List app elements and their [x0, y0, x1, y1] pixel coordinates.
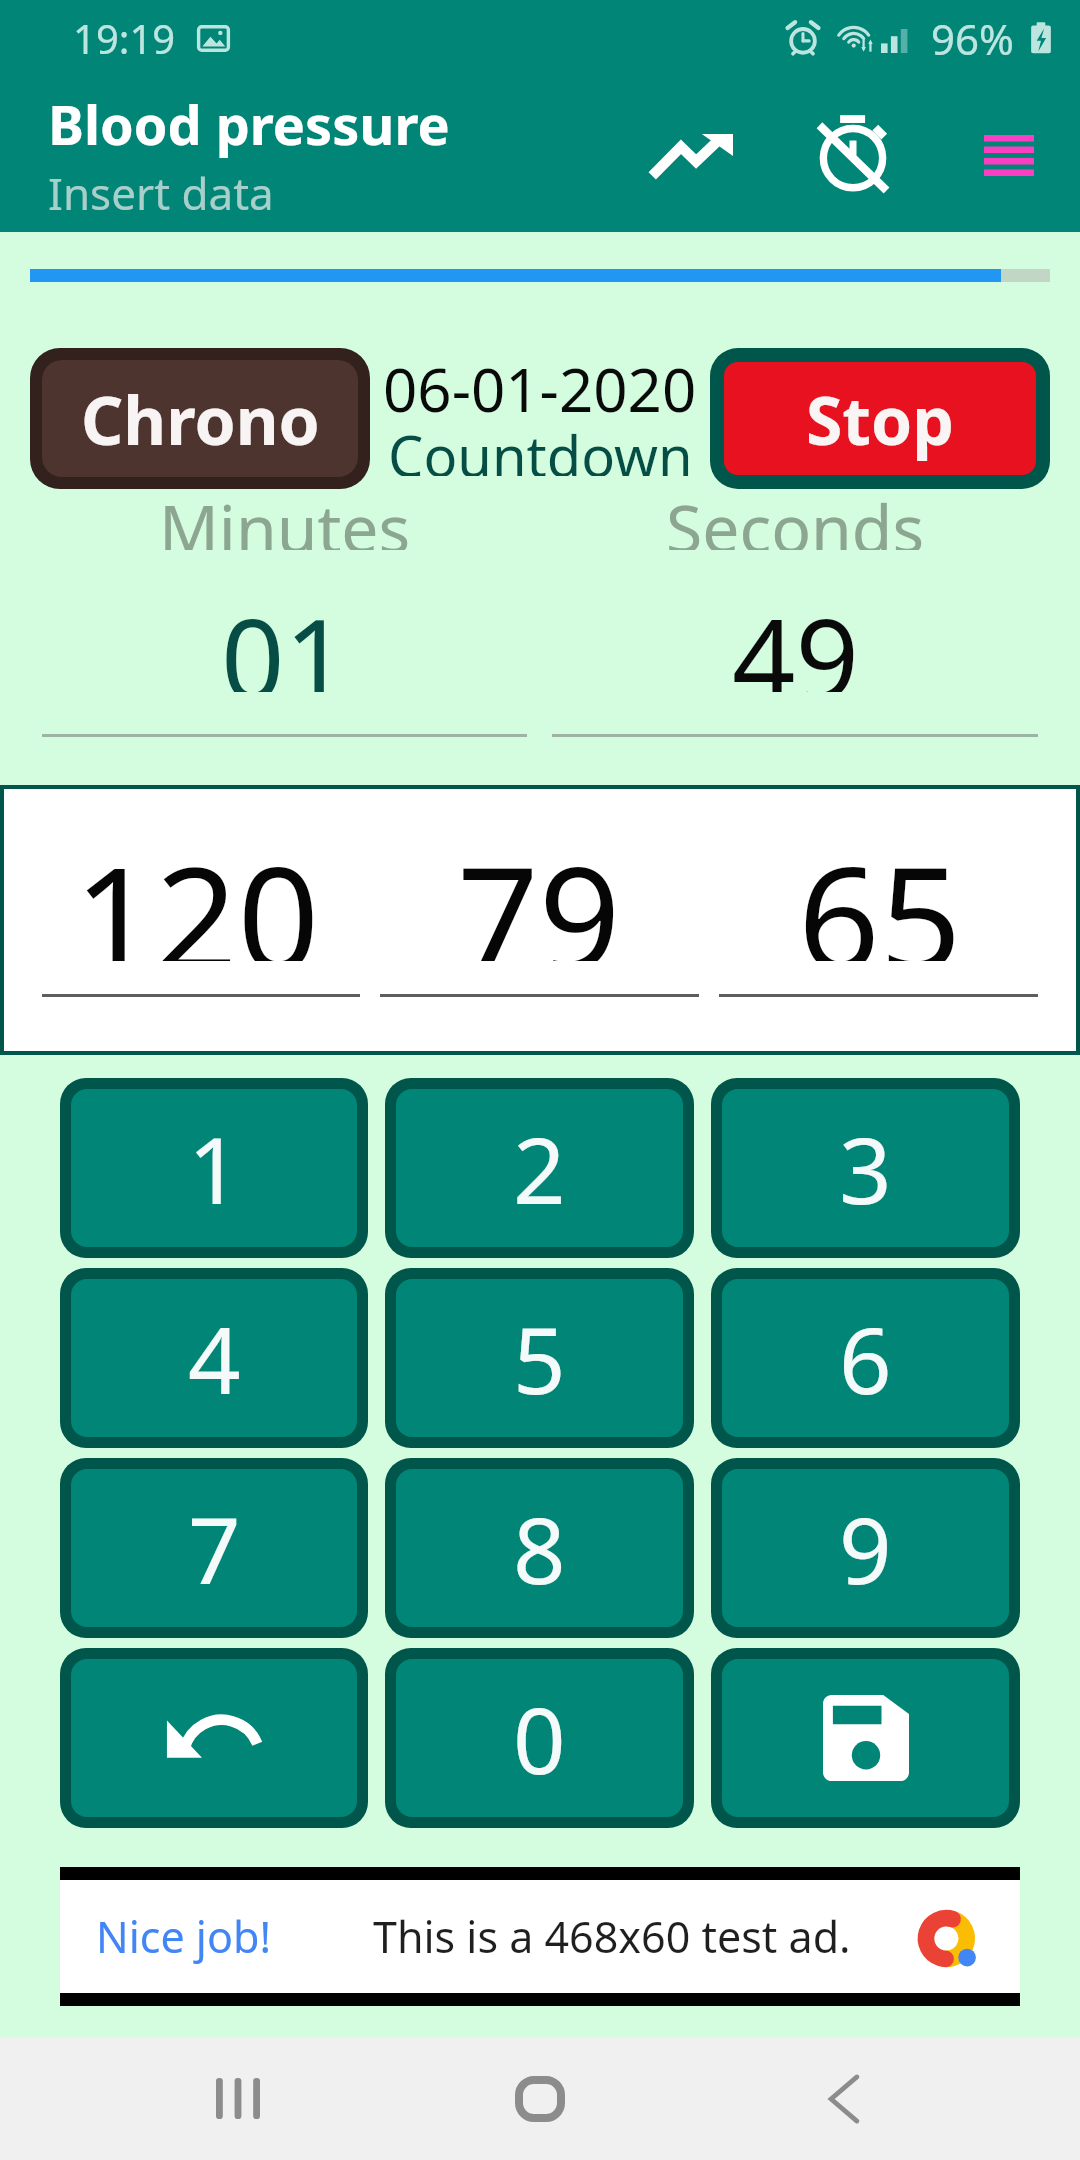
button[interactable]: Chrono — [42, 360, 358, 477]
button[interactable]: Undo — [71, 1659, 357, 1817]
button[interactable]: Stop — [724, 362, 1036, 475]
staticText: 1 — [188, 1106, 241, 1231]
button[interactable]: 7 — [71, 1469, 357, 1627]
staticText: 96% — [931, 10, 1014, 67]
staticText: 120 — [74, 818, 320, 961]
staticText: 4 — [188, 1296, 241, 1421]
button[interactable]: 1 — [71, 1089, 357, 1247]
staticText: 5 — [513, 1296, 566, 1421]
staticText: 79 — [457, 818, 621, 961]
staticText: 9 — [839, 1486, 892, 1611]
staticText: 06-01-2020 — [383, 348, 697, 430]
button[interactable]: Recents — [0, 2037, 390, 2160]
staticText: Insert data — [48, 163, 274, 223]
staticText: 2 — [513, 1106, 566, 1231]
staticText: 8 — [513, 1486, 566, 1611]
button[interactable]: 9 — [722, 1469, 1009, 1627]
staticText: 65 — [798, 818, 962, 961]
staticText: Nice job! — [96, 1907, 271, 1966]
staticText: Seconds — [666, 482, 925, 550]
button[interactable]: 3 — [722, 1089, 1009, 1247]
button[interactable]: 4 — [71, 1279, 357, 1437]
button[interactable]: Home — [390, 2037, 690, 2160]
staticText: 19:19 — [73, 11, 176, 65]
staticText: Stop — [806, 374, 954, 464]
staticText: Minutes — [159, 482, 411, 550]
staticText: Countdown — [388, 417, 693, 476]
staticText: 0 — [513, 1676, 566, 1801]
button[interactable]: 5 — [396, 1279, 683, 1437]
button[interactable]: Menu — [910, 85, 1050, 225]
staticText: Chrono — [81, 374, 320, 464]
button[interactable]: Timer off — [758, 85, 910, 225]
staticText: 3 — [839, 1106, 892, 1231]
button[interactable]: 0 — [396, 1659, 683, 1817]
button[interactable]: Back — [690, 2037, 1080, 2160]
button[interactable]: Statistics — [626, 85, 758, 225]
button[interactable]: 8 — [396, 1469, 683, 1627]
staticText: 6 — [839, 1296, 892, 1421]
staticText: 49 — [732, 581, 859, 692]
staticText: 01 — [221, 581, 348, 692]
button[interactable]: 6 — [722, 1279, 1009, 1437]
staticText: Blood pressure — [48, 87, 450, 161]
staticText: 7 — [188, 1486, 241, 1611]
button[interactable]: Save — [722, 1659, 1009, 1817]
staticText: This is a 468x60 test ad. — [373, 1907, 851, 1966]
button[interactable]: 2 — [396, 1089, 683, 1247]
